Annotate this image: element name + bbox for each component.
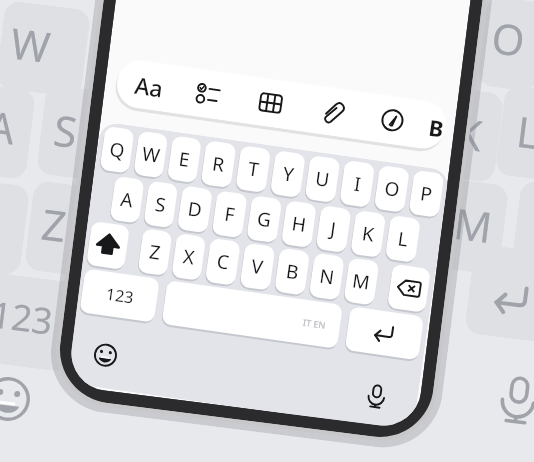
- button[interactable]: J: [315, 205, 351, 253]
- staticText: H: [290, 210, 309, 238]
- staticText: E: [177, 146, 192, 173]
- button[interactable]: C: [205, 238, 241, 286]
- button[interactable]: [316, 95, 350, 129]
- button[interactable]: [362, 382, 391, 411]
- button[interactable]: W: [133, 131, 168, 178]
- button[interactable]: Q: [99, 126, 134, 174]
- button[interactable]: E: [167, 135, 202, 183]
- button[interactable]: K: [350, 210, 386, 258]
- staticText: F: [223, 201, 236, 228]
- staticText: X: [181, 243, 197, 271]
- staticText: A: [119, 186, 135, 213]
- staticText: R: [211, 150, 226, 178]
- staticText: A: [0, 97, 18, 156]
- staticText: P: [419, 180, 434, 207]
- button[interactable]: 123: [79, 268, 160, 323]
- button[interactable]: [191, 77, 225, 111]
- button[interactable]: R: [200, 140, 236, 188]
- staticText: T: [246, 155, 261, 183]
- staticText: G: [255, 205, 273, 233]
- button[interactable]: [254, 86, 288, 120]
- button[interactable]: IT EN: [161, 280, 343, 349]
- staticText: Aa: [133, 69, 166, 104]
- button[interactable]: O: [374, 165, 410, 213]
- staticText: Q: [108, 136, 126, 164]
- button[interactable]: A: [110, 176, 145, 224]
- staticText: Z: [148, 238, 162, 266]
- button[interactable]: F: [212, 190, 248, 238]
- button[interactable]: Y: [270, 150, 306, 198]
- button[interactable]: [92, 342, 119, 369]
- staticText: L: [396, 225, 410, 253]
- button[interactable]: M: [343, 257, 379, 305]
- button[interactable]: [387, 264, 431, 313]
- staticText: W: [7, 14, 54, 75]
- staticText: B: [427, 112, 446, 141]
- button[interactable]: D: [177, 185, 213, 233]
- button[interactable]: U: [304, 155, 340, 203]
- staticText: V: [250, 253, 265, 280]
- button[interactable]: L: [385, 215, 421, 263]
- button[interactable]: V: [239, 243, 275, 291]
- button[interactable]: Z: [137, 228, 172, 276]
- staticText: I: [352, 171, 363, 197]
- staticText: Y: [281, 160, 296, 188]
- staticText: M: [351, 267, 372, 296]
- button[interactable]: B: [424, 111, 448, 142]
- staticText: L: [513, 102, 534, 161]
- staticText: 123: [105, 283, 135, 308]
- button[interactable]: B: [274, 248, 310, 296]
- staticText: N: [318, 263, 337, 291]
- staticText: IT EN: [302, 316, 327, 331]
- staticText: K: [452, 104, 485, 163]
- button[interactable]: [344, 306, 424, 360]
- button[interactable]: G: [246, 195, 282, 243]
- staticText: J: [329, 216, 338, 242]
- button[interactable]: [86, 221, 130, 270]
- staticText: M: [450, 194, 496, 255]
- button[interactable]: P: [408, 170, 444, 218]
- staticText: Z: [38, 195, 70, 254]
- button[interactable]: Aa: [128, 65, 169, 106]
- button[interactable]: X: [171, 233, 206, 281]
- staticText: K: [360, 220, 376, 248]
- button[interactable]: H: [281, 200, 317, 248]
- staticText: S: [50, 101, 81, 160]
- button[interactable]: [375, 103, 409, 137]
- button[interactable]: N: [309, 253, 345, 301]
- staticText: D: [186, 195, 204, 223]
- staticText: S: [153, 191, 168, 218]
- button[interactable]: T: [235, 145, 271, 193]
- button[interactable]: I: [339, 160, 375, 208]
- staticText: W: [140, 140, 162, 169]
- staticText: O: [488, 8, 528, 69]
- staticText: 123: [0, 289, 56, 346]
- button[interactable]: Aa: [127, 59, 450, 152]
- staticText: O: [383, 175, 402, 203]
- staticText: B: [284, 258, 301, 286]
- staticText: U: [314, 165, 331, 193]
- button[interactable]: S: [143, 181, 178, 228]
- staticText: C: [215, 248, 232, 276]
